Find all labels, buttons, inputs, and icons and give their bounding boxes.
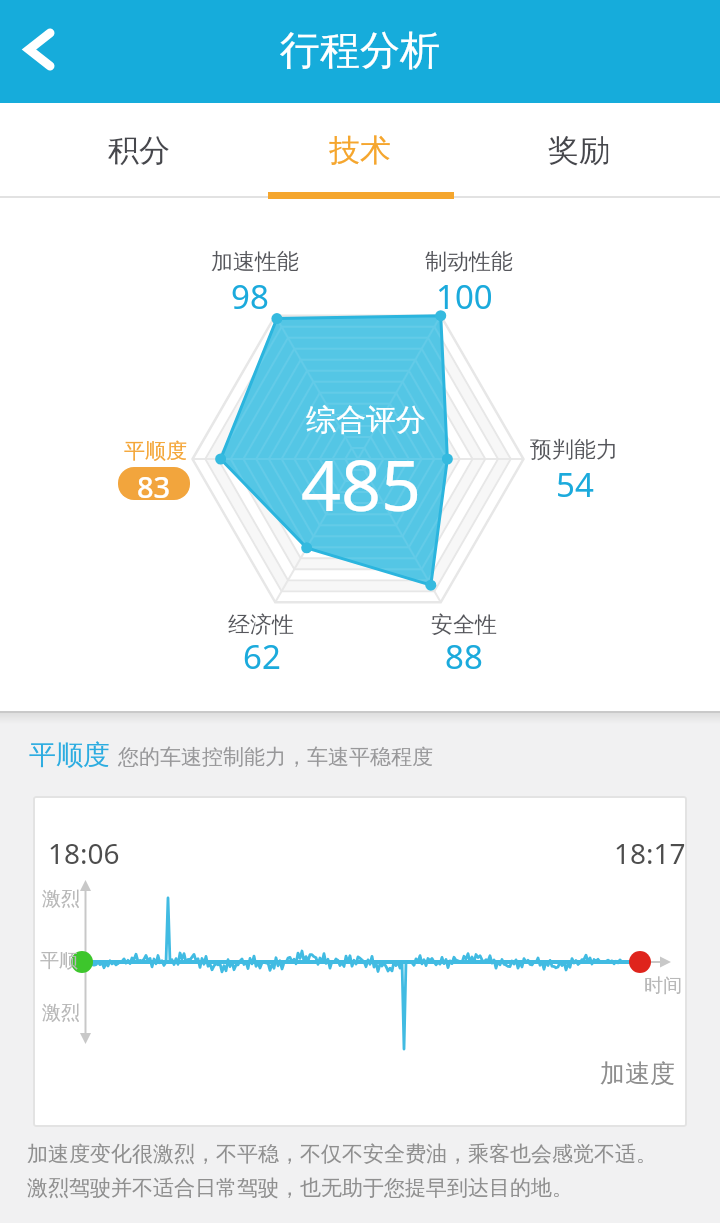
staticText: 62: [243, 634, 281, 679]
staticText: 技术: [329, 131, 391, 170]
staticText: 54: [556, 462, 594, 507]
button[interactable]: 积分: [49, 109, 229, 192]
staticText: 预判能力: [530, 436, 618, 464]
staticText: 平顺度: [29, 738, 110, 772]
staticText: 18:06: [48, 834, 120, 872]
staticText: 83: [137, 467, 171, 500]
staticText: 激烈: [42, 887, 80, 911]
staticText: 平顺度: [124, 438, 187, 464]
staticText: 您的车速控制能力，车速平稳程度: [118, 744, 433, 770]
staticText: 行程分析: [280, 25, 440, 75]
staticText: 100: [436, 274, 493, 319]
staticText: 18:17: [614, 834, 686, 872]
staticText: 加速性能: [211, 248, 299, 276]
staticText: 积分: [108, 131, 170, 170]
staticText: 时间: [644, 974, 682, 998]
button[interactable]: 技术: [270, 109, 450, 192]
staticText: 加速度: [600, 1058, 675, 1089]
staticText: 平顺: [40, 949, 78, 973]
button[interactable]: 奖励: [489, 109, 669, 192]
staticText: 88: [445, 634, 483, 679]
staticText: 制动性能: [425, 248, 513, 276]
staticText: 激烈: [42, 1001, 80, 1025]
button[interactable]: [8, 18, 78, 86]
staticText: 加速度变化很激烈，不平稳，不仅不安全费油，乘客也会感觉不适。 激烈驾驶并不适合日…: [27, 1141, 657, 1202]
staticText: 安全性: [431, 611, 497, 639]
staticText: 经济性: [228, 611, 294, 639]
staticText: 485: [301, 436, 422, 516]
staticText: 综合评分: [306, 401, 426, 439]
staticText: 98: [231, 274, 269, 319]
staticText: 奖励: [548, 131, 610, 170]
